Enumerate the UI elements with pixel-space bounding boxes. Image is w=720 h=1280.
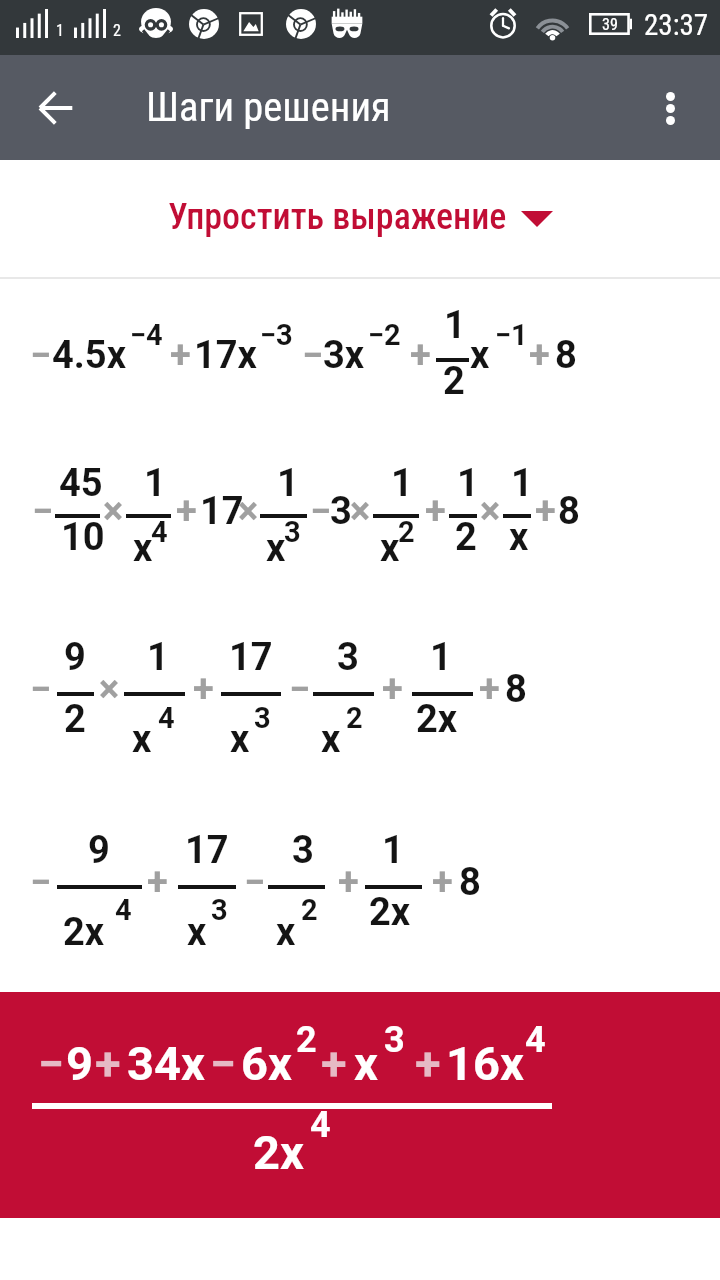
staticText: ×	[350, 489, 371, 534]
staticText: −	[210, 1036, 237, 1091]
staticText: +	[176, 489, 197, 534]
staticText: 9	[88, 828, 110, 873]
staticText: 3	[330, 489, 352, 534]
staticText: −4	[130, 318, 163, 352]
staticText: x	[509, 515, 529, 560]
staticText: 1	[391, 461, 413, 506]
staticText: 9	[64, 635, 86, 680]
staticText: 3	[284, 515, 301, 549]
staticText: 45	[59, 461, 103, 506]
staticText: 2x	[63, 910, 105, 955]
staticText: +	[338, 860, 359, 905]
staticText: +	[425, 489, 446, 534]
staticText: 1	[430, 635, 452, 680]
staticText: ×	[99, 667, 120, 712]
staticText: x	[470, 333, 490, 378]
staticText: 1	[382, 828, 404, 873]
staticText: 16x	[446, 1036, 524, 1091]
staticText: 4	[310, 1104, 331, 1146]
button[interactable]: Back	[24, 76, 88, 140]
staticText: 2	[64, 697, 86, 742]
staticText: 4	[115, 893, 132, 927]
staticText: x	[133, 526, 153, 571]
staticText: Упростить выражение	[168, 196, 507, 238]
staticText: −	[289, 667, 311, 712]
staticText: 17x	[194, 333, 257, 378]
staticText: −	[310, 489, 332, 534]
staticText: x	[266, 526, 286, 571]
staticText: 6x	[241, 1036, 292, 1091]
staticText: +	[479, 667, 500, 712]
staticText: −	[38, 1036, 65, 1091]
staticText: 3	[384, 1019, 405, 1061]
staticText: −3	[260, 318, 293, 352]
staticText: x	[230, 717, 250, 762]
staticText: 1	[144, 461, 166, 506]
staticText: 17	[200, 489, 244, 534]
staticText: −	[32, 489, 54, 534]
staticText: 8	[505, 667, 527, 712]
staticText: 2	[443, 359, 465, 404]
staticText: 1	[56, 21, 64, 40]
staticText: 2x	[369, 890, 411, 935]
staticText: 1	[511, 461, 533, 506]
staticText: +	[415, 1036, 441, 1091]
staticText: 4	[158, 701, 175, 735]
staticText: x	[321, 717, 341, 762]
staticText: −	[244, 860, 266, 905]
staticText: ×	[103, 489, 124, 534]
staticText: 17	[229, 635, 273, 680]
staticText: +	[147, 860, 168, 905]
staticText: 2x	[253, 1125, 304, 1180]
staticText: x	[132, 717, 152, 762]
staticText: x	[187, 910, 207, 955]
staticText: 3	[211, 893, 228, 927]
staticText: 2	[455, 515, 477, 560]
staticText: 2	[296, 1019, 317, 1061]
staticText: 3	[337, 635, 359, 680]
staticText: +	[410, 333, 431, 378]
staticText: ×	[238, 489, 259, 534]
staticText: 8	[558, 489, 580, 534]
staticText: 1	[457, 461, 479, 506]
staticText: 9	[66, 1036, 93, 1091]
staticText: +	[529, 333, 550, 378]
staticText: +	[535, 489, 556, 534]
staticText: +	[193, 667, 214, 712]
staticText: 4	[151, 515, 168, 549]
staticText: +	[432, 860, 453, 905]
staticText: x	[276, 910, 296, 955]
staticText: +	[170, 333, 191, 378]
staticText: −	[30, 667, 52, 712]
staticText: 1	[277, 461, 299, 506]
staticText: 3	[292, 828, 314, 873]
staticText: x	[354, 1036, 378, 1091]
staticText: 8	[555, 333, 577, 378]
staticText: +	[95, 1036, 121, 1091]
staticText: −	[30, 333, 52, 378]
staticText: 1	[444, 303, 466, 348]
staticText: 3	[254, 701, 271, 735]
button[interactable]: Упростить выражение	[154, 186, 567, 252]
staticText: 34x	[127, 1036, 205, 1091]
staticText: 8	[459, 860, 481, 905]
staticText: +	[321, 1036, 347, 1091]
staticText: ×	[480, 489, 501, 534]
staticText: −1	[495, 318, 528, 352]
staticText: x	[380, 526, 400, 571]
staticText: 4.5x	[52, 333, 126, 378]
staticText: 10	[61, 515, 105, 560]
staticText: 1	[147, 635, 169, 680]
staticText: 2	[301, 893, 318, 927]
staticText: 2	[398, 515, 415, 549]
staticText: 23:37	[644, 8, 709, 42]
staticText: 17	[185, 828, 229, 873]
staticText: −	[302, 333, 324, 378]
staticText: 4	[525, 1019, 546, 1061]
staticText: −	[30, 860, 52, 905]
staticText: 2	[113, 21, 121, 40]
staticText: +	[382, 667, 403, 712]
staticText: Шаги решения	[146, 83, 391, 130]
button[interactable]: More options	[638, 76, 702, 140]
staticText: 2	[346, 701, 363, 735]
